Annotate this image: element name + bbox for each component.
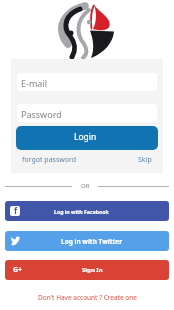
staticText: Log in with Twitter — [61, 237, 123, 246]
staticText: Password — [21, 108, 62, 120]
staticText: f — [14, 206, 18, 215]
staticText: Don't Have account ? Create one — [38, 293, 137, 302]
button[interactable]: E-mail — [17, 73, 157, 91]
staticText: Login — [74, 131, 97, 143]
staticText: forgot password — [22, 155, 77, 165]
button[interactable]: Skip — [127, 154, 152, 165]
button[interactable]: Password — [17, 104, 157, 122]
staticText: OR — [81, 182, 90, 190]
button[interactable]: Login — [16, 126, 158, 150]
button[interactable]: G+ — [5, 260, 169, 280]
button[interactable]: Don't Have account ? Create one — [0, 291, 174, 303]
button[interactable]: f — [5, 201, 169, 221]
staticText: Sign In — [82, 266, 103, 274]
button[interactable]: Log in with Twitter — [5, 231, 169, 251]
staticText: E-mail — [21, 77, 48, 89]
staticText: Skip — [138, 155, 152, 165]
staticText: G+ — [13, 265, 23, 275]
staticText: Log in with Facebook — [54, 208, 109, 215]
button[interactable]: forgot password — [22, 154, 78, 165]
